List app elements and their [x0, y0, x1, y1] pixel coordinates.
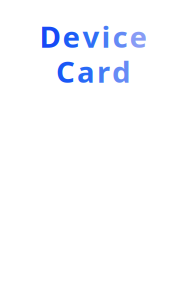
staticText: C [56, 52, 75, 91]
staticText: e [62, 17, 80, 56]
staticText: r [97, 52, 110, 91]
staticText: i [101, 17, 110, 56]
staticText: v [82, 17, 99, 56]
staticText: D [39, 17, 60, 56]
staticText: d [112, 52, 131, 91]
staticText: c [112, 17, 127, 56]
staticText: e [129, 17, 147, 56]
staticText: a [77, 52, 95, 91]
